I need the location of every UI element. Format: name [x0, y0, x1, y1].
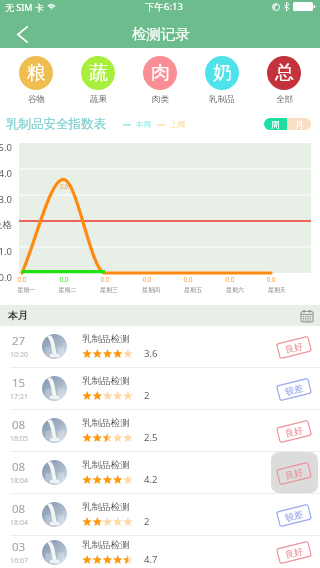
button[interactable]: 月: [287, 118, 311, 130]
staticText: 乳制品检测: [82, 417, 130, 429]
staticText: 0.0: [94, 275, 116, 284]
staticText: 10:20: [10, 350, 28, 360]
staticText: 肉: [151, 61, 170, 85]
button[interactable]: 较差: [277, 378, 311, 400]
staticText: 2.5: [144, 431, 158, 444]
button[interactable]: 总: [253, 48, 315, 105]
button[interactable]: 良好: [277, 420, 311, 442]
button[interactable]: 奶: [191, 48, 253, 105]
button[interactable]: 08: [0, 494, 320, 535]
button[interactable]: Calendar: [301, 310, 313, 322]
staticText: 3.6: [144, 347, 158, 360]
button[interactable]: 较差: [277, 504, 311, 526]
staticText: 0.0: [260, 275, 282, 284]
button[interactable]: 蔬: [67, 48, 129, 105]
staticText: 上周: [170, 120, 185, 129]
staticText: 星期六: [214, 286, 256, 294]
staticText: 全部: [276, 94, 293, 105]
staticText: 谷物: [28, 94, 45, 105]
staticText: 18:05: [10, 434, 28, 444]
staticText: 粮: [27, 61, 46, 85]
button[interactable]: 良好: [277, 541, 311, 563]
staticText: 乳制品安全指数表: [6, 116, 106, 132]
staticText: 17:21: [10, 392, 28, 402]
staticText: 1.0: [0, 245, 12, 258]
staticText: 08: [12, 501, 26, 517]
button[interactable]: 粮: [5, 48, 67, 105]
button[interactable]: 周: [264, 118, 287, 130]
staticText: 星期天: [256, 286, 298, 294]
staticText: 良好: [284, 466, 304, 481]
staticText: 15: [12, 375, 26, 391]
staticText: 0.0: [219, 275, 241, 284]
staticText: 2: [144, 515, 150, 528]
staticText: 3.0: [0, 193, 12, 206]
staticText: 08: [12, 459, 26, 475]
button[interactable]: 08: [0, 410, 320, 451]
staticText: 检测记录: [132, 25, 190, 43]
staticText: 乳制品检测: [82, 459, 130, 471]
staticText: 良好: [284, 340, 304, 355]
button[interactable]: Back: [0, 20, 44, 48]
staticText: 3.6: [53, 182, 75, 191]
staticText: 下午6:13: [145, 0, 183, 13]
staticText: 18:04: [10, 518, 28, 528]
staticText: 03: [12, 539, 26, 555]
staticText: 星期一: [6, 286, 47, 294]
staticText: 5.0: [0, 141, 12, 154]
staticText: 4.7: [144, 553, 158, 566]
staticText: 08: [12, 417, 26, 433]
staticText: 蔬果: [90, 94, 107, 105]
staticText: 周: [271, 119, 280, 130]
staticText: 本周: [136, 120, 151, 129]
staticText: 乳制品检测: [82, 333, 130, 345]
staticText: 0.0: [177, 275, 199, 284]
button[interactable]: 肉: [129, 48, 191, 105]
staticText: 0.0: [53, 275, 75, 284]
staticText: 0.0: [136, 275, 158, 284]
staticText: 蔬: [89, 61, 108, 85]
staticText: 乳制品检测: [82, 539, 130, 551]
staticText: 0.0: [0, 271, 12, 284]
button[interactable]: 27: [0, 326, 320, 367]
staticText: 本月: [8, 309, 28, 322]
staticText: 星期三: [88, 286, 130, 294]
staticText: 乳制品检测: [82, 501, 130, 513]
button[interactable]: 03: [0, 536, 320, 568]
staticText: 2: [144, 389, 150, 402]
button[interactable]: 15: [0, 368, 320, 409]
staticText: 4.0: [0, 167, 12, 180]
staticText: 较差: [284, 382, 304, 397]
staticText: 星期五: [172, 286, 214, 294]
staticText: 乳制品: [209, 94, 235, 105]
staticText: 无 SIM 卡: [5, 1, 44, 13]
staticText: 肉类: [152, 94, 169, 105]
staticText: 18:04: [10, 476, 28, 486]
staticText: 乳制品检测: [82, 375, 130, 387]
staticText: 良好: [284, 424, 304, 439]
staticText: 4.2: [144, 473, 158, 486]
staticText: 及格: [0, 219, 12, 231]
staticText: 16:07: [10, 556, 28, 566]
staticText: 较差: [284, 508, 304, 523]
button[interactable]: 良好: [277, 336, 311, 358]
staticText: 奶: [213, 61, 232, 85]
staticText: 0.0: [11, 275, 33, 284]
staticText: 月: [295, 119, 304, 130]
button[interactable]: 良好: [277, 462, 311, 484]
button[interactable]: 08: [0, 452, 320, 493]
staticText: 27: [12, 333, 26, 349]
staticText: 星期四: [130, 286, 172, 294]
staticText: 良好: [284, 545, 304, 560]
staticText: 星期二: [47, 286, 88, 294]
staticText: 总: [275, 61, 294, 85]
